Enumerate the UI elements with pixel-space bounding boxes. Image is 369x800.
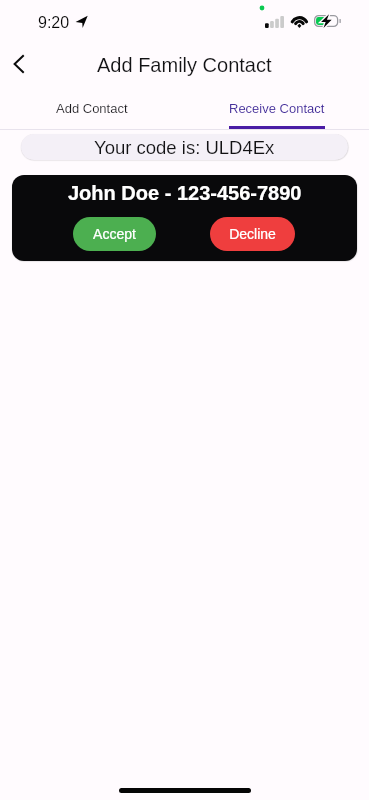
- button[interactable]: Back: [2, 47, 36, 81]
- staticText: Receive Contact: [229, 101, 325, 116]
- button[interactable]: Receive Contact: [184, 92, 369, 125]
- staticText: Add Contact: [56, 101, 128, 116]
- button[interactable]: Add Contact: [0, 92, 184, 125]
- button[interactable]: Accept: [73, 217, 156, 251]
- staticText: Your code is: ULD4Ex: [94, 137, 275, 158]
- button[interactable]: Decline: [210, 217, 295, 251]
- staticText: John Doe - 123-456-7890: [68, 182, 302, 204]
- staticText: Decline: [229, 226, 276, 242]
- staticText: 9:20: [38, 14, 70, 32]
- staticText: Accept: [93, 226, 136, 242]
- staticText: Add Family Contact: [97, 54, 272, 76]
